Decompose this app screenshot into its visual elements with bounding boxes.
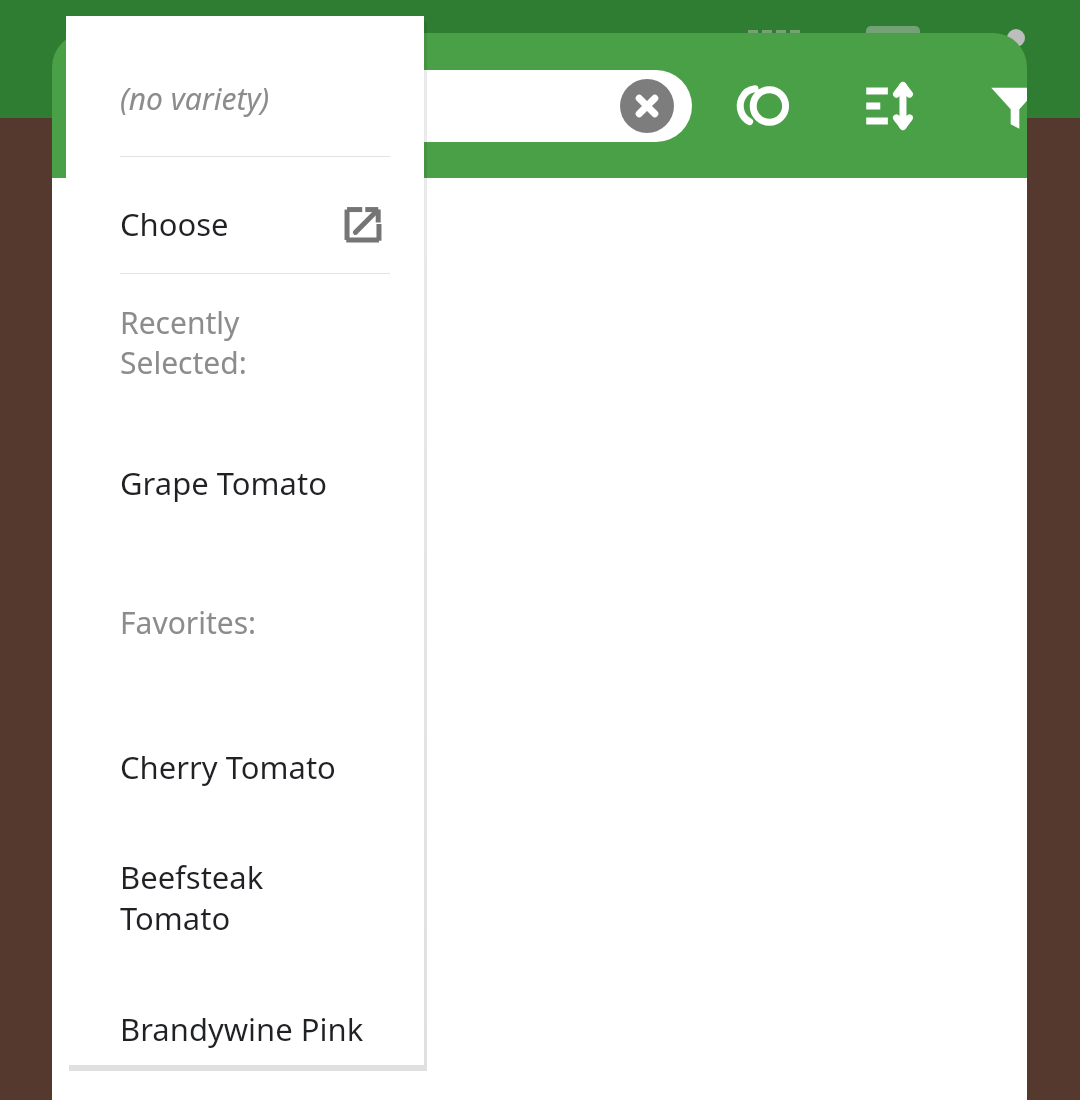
button[interactable]: Cherry Tomato — [66, 746, 424, 806]
button[interactable]: Brandywine Pink — [66, 1008, 424, 1065]
button[interactable]: Recently Selected: — [66, 302, 424, 414]
button[interactable]: Back — [52, 58, 148, 154]
staticText: (no variety) — [120, 78, 270, 119]
button[interactable]: Favorites: — [66, 602, 424, 654]
button[interactable]: Grape Tomato — [66, 462, 424, 522]
button[interactable]: Sort — [838, 61, 942, 151]
staticText: Brandywine Pink — [120, 1008, 364, 1050]
button[interactable]: Choose — [66, 203, 424, 273]
button[interactable]: (no variety) — [66, 78, 424, 156]
staticText: Cherry Tomato — [120, 746, 336, 788]
button[interactable]: Clear search — [140, 70, 692, 142]
button[interactable]: Filter — [963, 61, 1027, 151]
staticText: Beefsteak Tomato — [120, 856, 264, 939]
button[interactable]: Beefsteak Tomato — [66, 856, 424, 956]
staticText: Choose — [120, 203, 229, 245]
staticText: Favorites: — [120, 602, 257, 643]
button[interactable]: Clear search — [620, 79, 674, 133]
staticText: Grape Tomato — [120, 462, 327, 504]
button[interactable]: Lens — [712, 61, 816, 151]
staticText: Recently Selected: — [120, 302, 247, 383]
